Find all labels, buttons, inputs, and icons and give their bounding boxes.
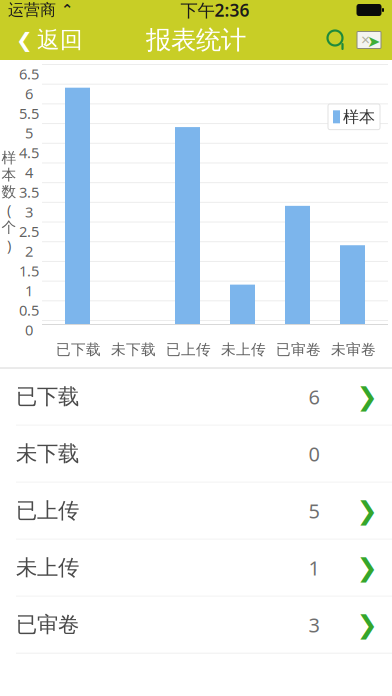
button[interactable]: 已审卷 [0, 597, 392, 654]
staticText: ➤ [367, 32, 380, 51]
staticText: 运营商 [8, 0, 56, 20]
staticText: ✕ [360, 33, 370, 47]
staticText: 已审卷 [16, 612, 79, 638]
button[interactable]: 未上传 [0, 540, 392, 597]
staticText: 5.5 [19, 103, 39, 123]
staticText: 6 [25, 84, 33, 103]
staticText: 3 [308, 611, 319, 638]
staticText: 4 [25, 163, 33, 182]
staticText: 未上传 [16, 555, 79, 581]
staticText: 已上传 [166, 341, 211, 359]
staticText: 未下载 [111, 341, 156, 359]
staticText: ❮ [16, 29, 33, 51]
staticText: 本 [1, 166, 16, 184]
staticText: 个 [1, 218, 16, 236]
staticText: 已下载 [16, 384, 79, 410]
staticText: 已审卷 [276, 341, 321, 359]
staticText: 5 [25, 123, 33, 143]
staticText: 0 [25, 320, 33, 340]
staticText: 样本 [343, 107, 375, 127]
staticText: 4.5 [19, 143, 39, 162]
staticText: 6.5 [19, 64, 39, 84]
button[interactable]: 发送邮件 [352, 24, 386, 56]
staticText: ❯ [356, 382, 377, 411]
button[interactable]: 未下载 [0, 426, 392, 483]
staticText: 未上传 [221, 341, 266, 359]
staticText: 6 [308, 383, 319, 410]
button[interactable]: 搜索 [322, 24, 352, 56]
staticText: ❯ [356, 553, 377, 582]
staticText: 2.5 [19, 222, 39, 241]
button[interactable]: ❮ [6, 21, 93, 59]
staticText: 返回 [37, 26, 83, 54]
staticText: 0.5 [19, 300, 39, 320]
staticText: 3 [25, 202, 33, 221]
staticText: 1 [308, 554, 319, 581]
button[interactable]: 已上传 [0, 483, 392, 540]
staticText: 3.5 [19, 182, 39, 202]
staticText: 下午2:36 [180, 0, 249, 21]
staticText: ) [7, 235, 11, 255]
staticText: 报表统计 [146, 24, 246, 55]
staticText: 5 [308, 497, 319, 524]
staticText: 1.5 [19, 261, 39, 280]
staticText: 2 [25, 241, 33, 261]
staticText: 数 [1, 183, 16, 201]
staticText: 已上传 [16, 498, 79, 524]
staticText: 0 [308, 440, 319, 467]
staticText: 已下载 [56, 341, 101, 359]
staticText: ⌃ [56, 2, 73, 18]
staticText: 未审卷 [331, 341, 376, 359]
staticText: ❯ [356, 610, 377, 639]
staticText: ( [7, 200, 11, 219]
staticText: ❯ [356, 496, 377, 525]
button[interactable]: 已下载 [0, 369, 392, 426]
staticText: 未下载 [16, 441, 79, 467]
staticText: 样 [1, 149, 16, 167]
staticText: 1 [25, 281, 33, 300]
